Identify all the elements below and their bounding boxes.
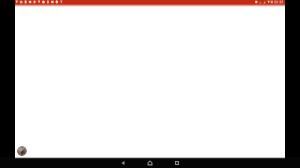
button[interactable]: Home [139,157,161,168]
button[interactable]: Account [17,146,27,156]
button[interactable]: Back [112,157,134,168]
button[interactable]: Recent apps [166,157,188,168]
